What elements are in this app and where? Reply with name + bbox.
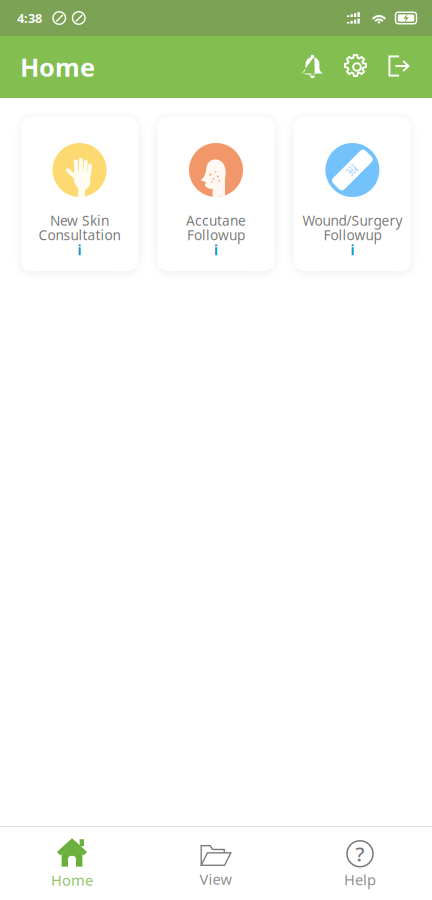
staticText: Accutane (186, 211, 246, 230)
staticText: ? (355, 840, 364, 867)
staticText: Followup (187, 226, 245, 244)
staticText: i (350, 241, 354, 259)
button[interactable]: Accutane (157, 117, 275, 271)
staticText: i (214, 241, 218, 259)
staticText: New Skin (50, 211, 109, 230)
button[interactable]: Home (0, 827, 144, 900)
button[interactable]: Notifications (291, 41, 335, 93)
button[interactable]: Wound/Surgery (294, 117, 411, 271)
staticText: Help (344, 870, 376, 889)
staticText: Wound/Surgery (302, 211, 402, 230)
button[interactable]: New Skin (21, 117, 138, 271)
button[interactable]: ? (288, 827, 432, 900)
button[interactable]: Log out (379, 41, 423, 93)
staticText: 4:38 (17, 9, 42, 26)
button[interactable]: View (144, 827, 288, 900)
staticText: Consultation (39, 226, 121, 244)
staticText: View (199, 869, 232, 889)
button[interactable]: Settings (335, 41, 379, 93)
staticText: Home (20, 50, 95, 84)
staticText: Followup (323, 226, 381, 244)
staticText: Home (51, 870, 93, 890)
staticText: i (78, 241, 82, 259)
